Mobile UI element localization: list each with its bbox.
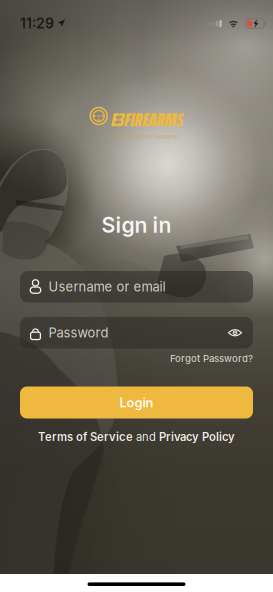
staticText: SHOOTING SPORTS ACADEMY [115, 134, 179, 140]
staticText: Password [48, 325, 108, 340]
staticText: Privacy Policy [159, 430, 235, 443]
button[interactable]: Login [20, 386, 253, 418]
button[interactable]: Username or email [20, 271, 253, 302]
staticText: Sign in [101, 213, 171, 237]
button[interactable]: Show password [225, 323, 245, 343]
staticText: Terms of Service [38, 430, 133, 443]
staticText: Login [119, 395, 153, 410]
staticText: 11:29 [20, 15, 54, 32]
staticText: Forgot Password? [170, 353, 253, 364]
button[interactable]: Forgot Password? [170, 353, 253, 364]
staticText: E3FIREARMS [111, 105, 183, 134]
staticText: and [133, 430, 159, 443]
button[interactable]: Terms of Service [38, 430, 133, 443]
button[interactable]: Privacy Policy [159, 430, 235, 443]
staticText: Username or email [48, 279, 165, 294]
